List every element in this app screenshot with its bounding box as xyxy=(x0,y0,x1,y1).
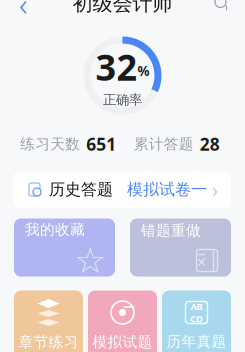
staticText: % xyxy=(137,62,149,80)
staticText: 28 xyxy=(200,132,220,155)
button[interactable]: Search xyxy=(205,0,239,20)
staticText: 累计答题 xyxy=(134,135,194,153)
staticText: 我的收藏 xyxy=(25,220,85,238)
staticText: 历史答题 xyxy=(49,180,113,199)
staticText: AB xyxy=(190,300,202,312)
staticText: › xyxy=(212,176,218,203)
staticText: 练习天数 xyxy=(20,135,80,153)
staticText: ☆ xyxy=(74,240,106,281)
staticText: 模拟试题 xyxy=(92,333,152,351)
staticText: × xyxy=(196,250,206,273)
staticText: 32 xyxy=(95,43,137,91)
staticText: CD xyxy=(190,312,203,325)
button[interactable]: 章节练习 xyxy=(14,290,83,352)
button[interactable]: AB xyxy=(162,290,231,352)
button[interactable]: 历史答题 xyxy=(14,171,231,207)
staticText: 初级会计师 xyxy=(72,0,172,16)
staticText: 错题重做 xyxy=(141,221,201,239)
staticText: 章节练习 xyxy=(18,333,78,351)
button[interactable]: Back xyxy=(6,0,40,20)
staticText: 正确率 xyxy=(103,92,142,108)
button[interactable]: 模拟试题 xyxy=(88,290,157,352)
staticText: ‹ xyxy=(19,0,27,25)
staticText: 历年真题 xyxy=(166,332,226,350)
button[interactable]: 错题重做 xyxy=(130,218,231,276)
staticText: 模拟试卷一 xyxy=(127,180,207,199)
staticText: 651 xyxy=(86,132,116,155)
button[interactable]: 我的收藏 xyxy=(14,218,115,276)
